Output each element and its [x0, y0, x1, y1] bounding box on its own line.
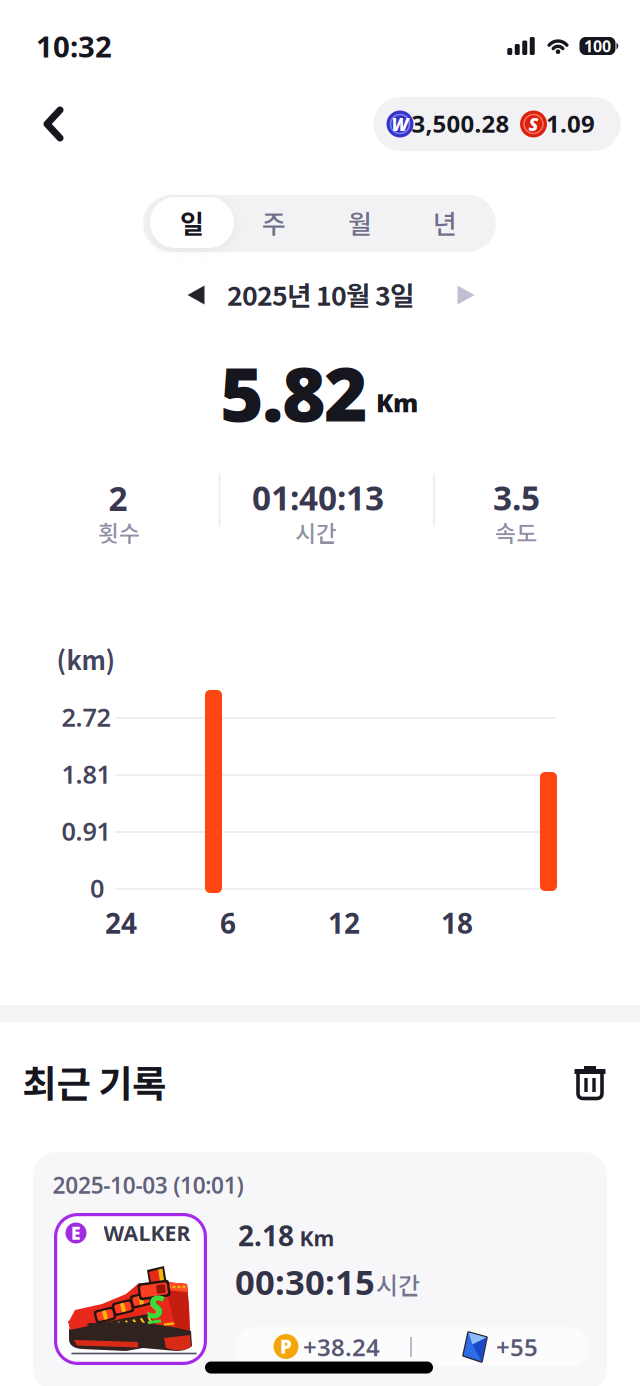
staticText: 일: [180, 204, 204, 241]
button[interactable]: Next day: [457, 285, 474, 304]
staticText: 5.82: [220, 343, 368, 442]
staticText: 0.91: [61, 814, 110, 848]
staticText: 2.18: [238, 1217, 294, 1254]
staticText: (km): [56, 641, 115, 677]
staticText: 3,500.28: [411, 108, 509, 139]
button[interactable]: Record 2025-10-03: [33, 1152, 607, 1386]
staticText: 2025년 10월 3일: [227, 275, 415, 313]
staticText: 0: [90, 871, 104, 905]
staticText: +38.24: [303, 1331, 380, 1363]
staticText: 1.81: [61, 757, 110, 791]
staticText: 시간: [376, 1267, 420, 1301]
button[interactable]: 주: [234, 194, 314, 251]
staticText: 속도: [495, 516, 537, 548]
staticText: 최근 기록: [22, 1054, 166, 1109]
staticText: 01:40:13: [252, 475, 384, 520]
staticText: 2025-10-03 (10:01): [52, 1170, 243, 1200]
staticText: 2: [108, 476, 127, 520]
button[interactable]: 년: [405, 194, 485, 251]
staticText: 24: [105, 904, 137, 942]
staticText: 월: [348, 204, 372, 241]
staticText: Km: [376, 386, 418, 419]
button[interactable]: 일: [150, 194, 234, 251]
staticText: +55: [496, 1331, 538, 1363]
button[interactable]: Token balances: [373, 97, 620, 151]
staticText: 6: [220, 904, 236, 942]
staticText: 00:30:15: [235, 1258, 375, 1304]
staticText: 3.5: [493, 475, 540, 520]
staticText: 주: [262, 204, 286, 241]
staticText: W: [391, 112, 408, 136]
button[interactable]: Back: [44, 107, 64, 141]
staticText: 1.09: [546, 108, 595, 139]
staticText: 년: [433, 204, 457, 241]
staticText: 12: [328, 904, 360, 942]
staticText: 2.72: [61, 700, 110, 734]
button[interactable]: 월: [320, 194, 400, 251]
staticText: 100: [584, 35, 611, 57]
staticText: S: [147, 1284, 165, 1328]
staticText: 시간: [295, 516, 337, 548]
staticText: 18: [441, 904, 473, 942]
staticText: Km: [299, 1224, 334, 1252]
staticText: 횟수: [98, 516, 140, 548]
staticText: E: [71, 1221, 81, 1244]
staticText: S: [528, 112, 538, 136]
button[interactable]: Previous day: [187, 285, 204, 304]
button[interactable]: Delete records: [574, 1064, 605, 1102]
staticText: P: [280, 1334, 292, 1359]
staticText: 10:32: [36, 26, 112, 65]
staticText: WALKER: [103, 1219, 190, 1247]
